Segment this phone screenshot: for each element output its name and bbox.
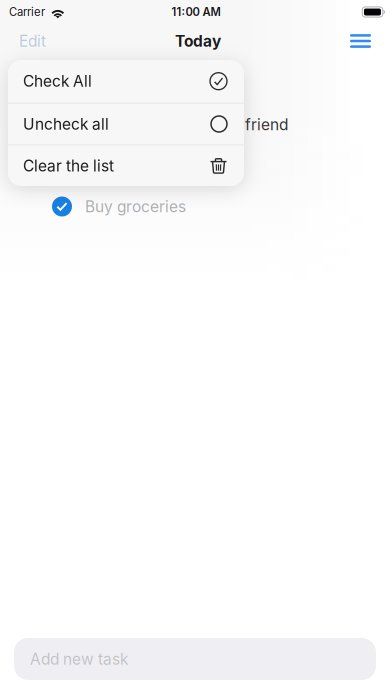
staticText: Check All [23, 72, 92, 90]
button[interactable]: Check All [8, 60, 244, 103]
button[interactable]: Catch up with a close friend [0, 104, 392, 145]
staticText: 11:00 AM [171, 5, 220, 19]
staticText: Catch up with a close friend [85, 115, 288, 134]
button[interactable]: Uncheck all [8, 103, 244, 144]
staticText: Clear the list [23, 156, 114, 175]
button[interactable]: Clear the list [8, 145, 244, 186]
button[interactable]: Menu [338, 26, 392, 56]
button[interactable]: Add new task [14, 638, 376, 680]
staticText: Add new task [30, 650, 128, 668]
staticText: Buy groceries [85, 197, 186, 216]
button[interactable]: Buy groceries [0, 186, 392, 227]
button[interactable]: Edit [0, 26, 58, 56]
staticText: Edit [19, 32, 46, 50]
staticText: Today [175, 32, 221, 50]
staticText: Uncheck all [23, 115, 109, 133]
staticText: Carrier [9, 5, 45, 19]
